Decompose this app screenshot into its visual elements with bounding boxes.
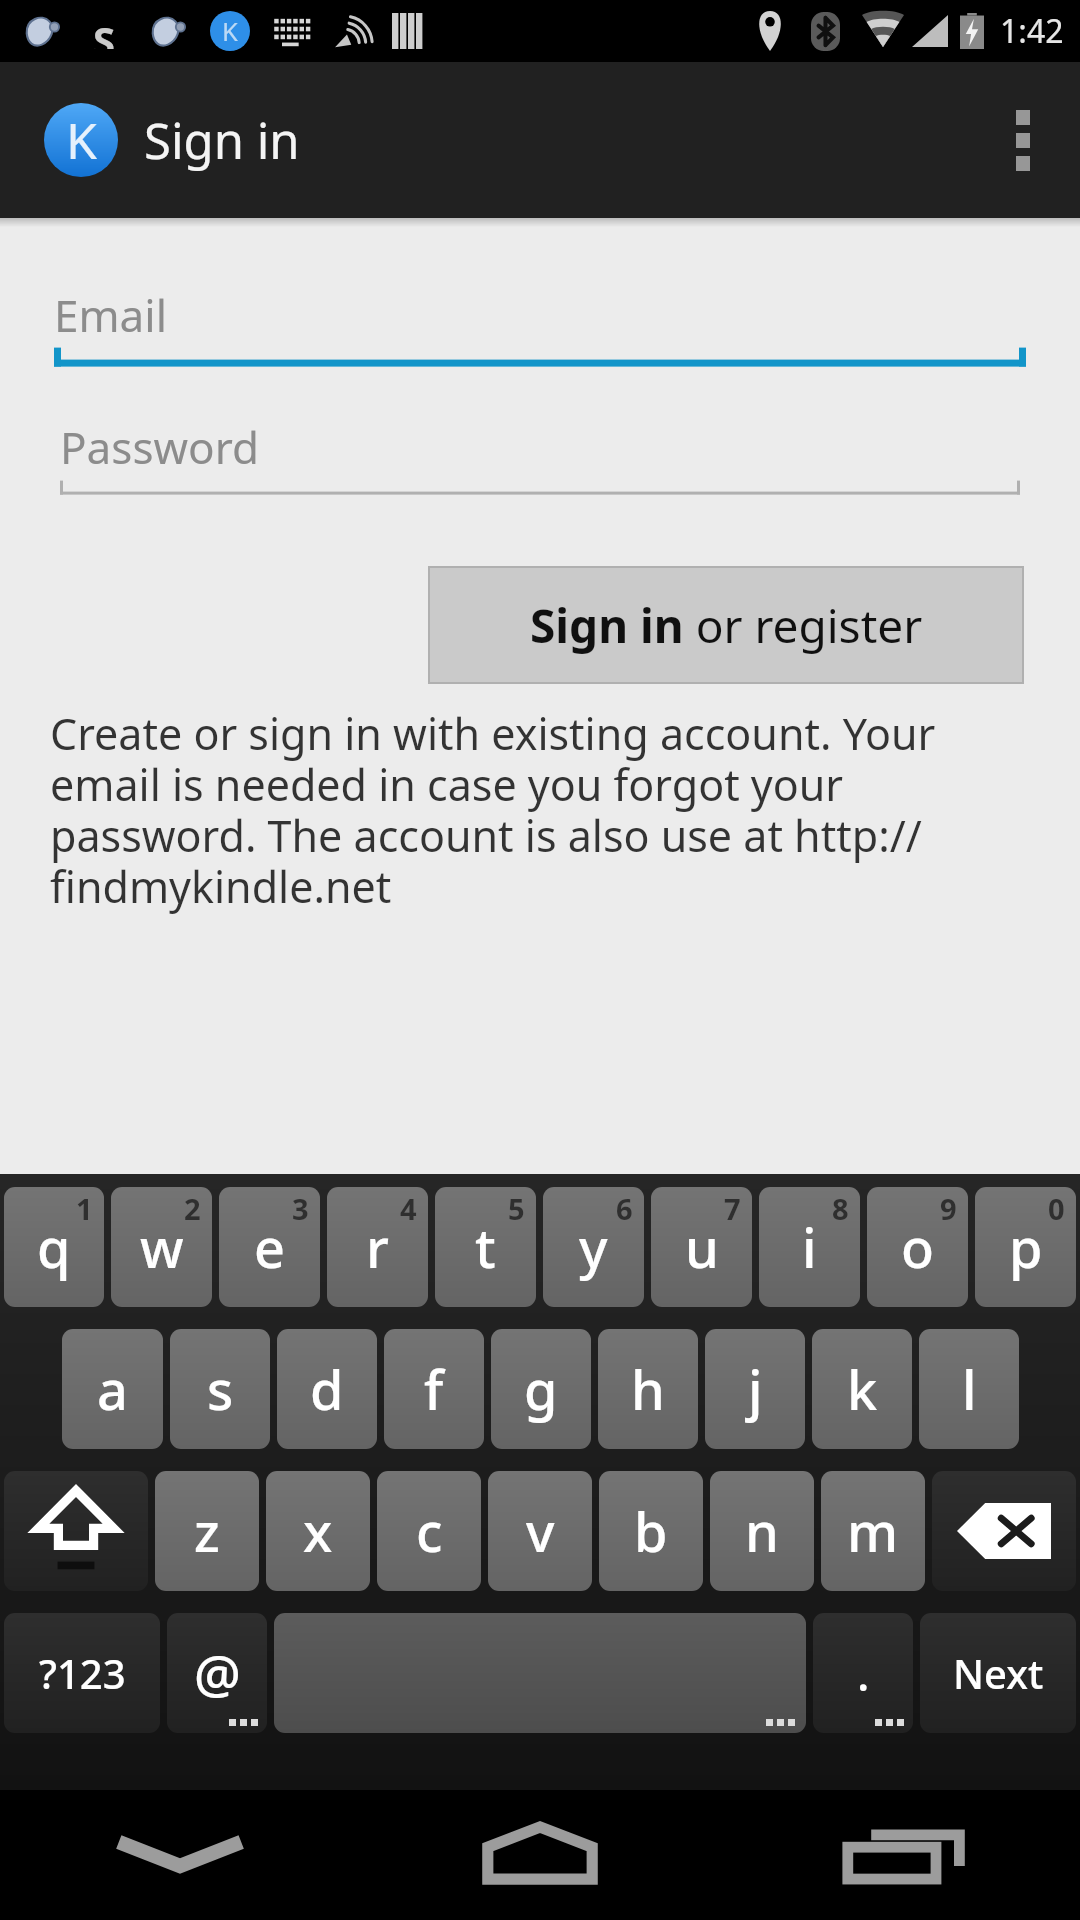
button[interactable]: Space: [274, 1613, 806, 1733]
staticText: K: [222, 14, 238, 49]
button[interactable]: Shift: [4, 1471, 148, 1591]
staticText: r: [366, 1210, 389, 1284]
button[interactable]: m: [821, 1471, 925, 1591]
button[interactable]: k: [812, 1329, 912, 1449]
staticText: t: [475, 1210, 496, 1284]
staticText: q: [37, 1210, 71, 1284]
staticText: o: [901, 1210, 934, 1284]
staticText: 9: [940, 1189, 957, 1228]
staticText: z: [194, 1494, 220, 1568]
button[interactable]: f: [384, 1329, 484, 1449]
staticText: 3: [292, 1189, 309, 1228]
button[interactable]: r: [327, 1187, 428, 1307]
button[interactable]: n: [710, 1471, 814, 1591]
button[interactable]: Backspace: [932, 1471, 1076, 1591]
staticText: Email: [54, 285, 167, 345]
button[interactable]: t: [435, 1187, 536, 1307]
staticText: i: [802, 1210, 817, 1284]
button[interactable]: z: [155, 1471, 259, 1591]
button[interactable]: i: [759, 1187, 860, 1307]
button[interactable]: s: [170, 1329, 270, 1449]
staticText: j: [748, 1352, 763, 1426]
staticText: k: [847, 1352, 878, 1426]
staticText: g: [524, 1352, 558, 1426]
staticText: w: [140, 1210, 184, 1284]
button[interactable]: Next: [920, 1613, 1076, 1733]
button[interactable]: Hide keyboard: [0, 1790, 360, 1920]
button[interactable]: .: [813, 1613, 913, 1733]
staticText: 1:42: [1000, 9, 1064, 53]
staticText: l: [962, 1352, 977, 1426]
staticText: 6: [616, 1189, 633, 1228]
button[interactable]: y: [543, 1187, 644, 1307]
button[interactable]: More options: [966, 62, 1080, 218]
button[interactable]: Recent apps: [720, 1790, 1080, 1920]
staticText: .: [857, 1642, 870, 1705]
staticText: y: [579, 1210, 608, 1284]
staticText: Sign in or register: [530, 594, 923, 657]
staticText: Next: [953, 1646, 1044, 1700]
staticText: h: [631, 1352, 665, 1426]
staticText: x: [303, 1494, 333, 1568]
button[interactable]: Sign in or register: [428, 566, 1024, 684]
staticText: 5: [508, 1189, 525, 1228]
staticText: n: [745, 1494, 779, 1568]
button[interactable]: h: [598, 1329, 698, 1449]
staticText: 8: [832, 1189, 849, 1228]
button[interactable]: u: [651, 1187, 752, 1307]
staticText: @: [194, 1638, 241, 1709]
button[interactable]: g: [491, 1329, 591, 1449]
staticText: 7: [724, 1189, 741, 1228]
button[interactable]: d: [277, 1329, 377, 1449]
staticText: f: [424, 1352, 444, 1426]
staticText: K: [66, 106, 97, 174]
button[interactable]: l: [919, 1329, 1019, 1449]
button[interactable]: c: [377, 1471, 481, 1591]
staticText: p: [1009, 1210, 1043, 1284]
staticText: v: [526, 1494, 555, 1568]
button[interactable]: v: [488, 1471, 592, 1591]
button[interactable]: o: [867, 1187, 968, 1307]
button[interactable]: Password: [60, 408, 1020, 500]
button[interactable]: x: [266, 1471, 370, 1591]
button[interactable]: b: [599, 1471, 703, 1591]
button[interactable]: w: [111, 1187, 212, 1307]
button[interactable]: Home: [360, 1790, 720, 1920]
staticText: ?123: [39, 1646, 126, 1700]
staticText: e: [254, 1210, 285, 1284]
staticText: s: [207, 1352, 234, 1426]
staticText: Password: [60, 417, 260, 477]
button[interactable]: p: [975, 1187, 1076, 1307]
button[interactable]: e: [219, 1187, 320, 1307]
button[interactable]: @: [167, 1613, 267, 1733]
staticText: 2: [184, 1189, 201, 1228]
staticText: d: [310, 1352, 344, 1426]
button[interactable]: a: [62, 1329, 163, 1449]
staticText: b: [634, 1494, 668, 1568]
button[interactable]: j: [705, 1329, 805, 1449]
button[interactable]: Email: [54, 276, 1026, 368]
staticText: m: [847, 1494, 899, 1568]
staticText: Sign in: [144, 107, 300, 174]
staticText: c: [416, 1494, 443, 1568]
button[interactable]: ?123: [4, 1613, 160, 1733]
staticText: 1: [76, 1189, 93, 1228]
staticText: a: [97, 1352, 128, 1426]
button[interactable]: q: [4, 1187, 104, 1307]
staticText: S: [93, 13, 116, 49]
staticText: 4: [400, 1189, 417, 1228]
staticText: 0: [1048, 1189, 1065, 1228]
staticText: u: [685, 1210, 719, 1284]
staticText: Create or sign in with existing account.…: [50, 704, 1030, 916]
